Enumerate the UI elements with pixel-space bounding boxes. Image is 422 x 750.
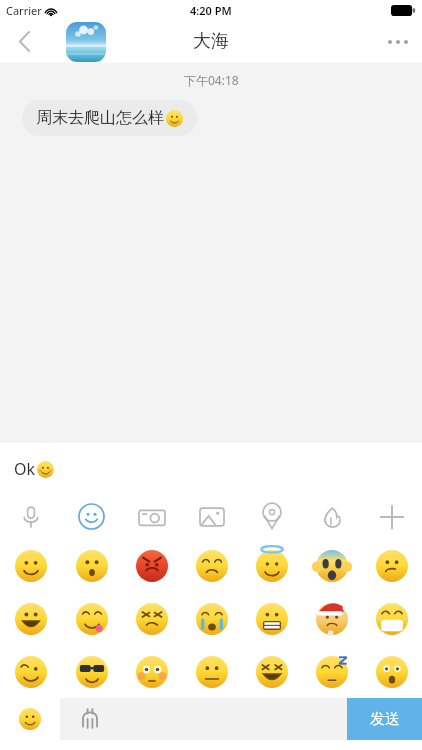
- button[interactable]: Emoji: [0, 645, 61, 698]
- button[interactable]: Emoji: [61, 539, 122, 592]
- staticText: Carrier: [6, 3, 42, 18]
- button[interactable]: Emoji: [0, 698, 60, 740]
- button[interactable]: 周末去爬山怎么样: [22, 100, 197, 136]
- button[interactable]: Emoji: [362, 645, 422, 698]
- button[interactable]: Back: [0, 20, 48, 63]
- button[interactable]: Voice: [0, 494, 61, 539]
- button[interactable]: Emoji: [0, 592, 61, 645]
- button[interactable]: Emoji: [182, 539, 242, 592]
- button[interactable]: Emoji: [182, 592, 242, 645]
- button[interactable]: Photos: [182, 494, 242, 539]
- button[interactable]: Emoji: [122, 645, 182, 698]
- button[interactable]: Emoji: [242, 592, 302, 645]
- button[interactable]: Emoji: [0, 539, 61, 592]
- button[interactable]: Camera: [122, 494, 182, 539]
- button[interactable]: Emoji: [362, 539, 422, 592]
- staticText: 周末去爬山怎么样: [36, 108, 164, 128]
- button[interactable]: Avatar: [66, 22, 106, 62]
- button[interactable]: Emoji: [302, 645, 362, 698]
- button[interactable]: Location: [242, 494, 302, 539]
- button[interactable]: Emoji: [302, 539, 362, 592]
- button[interactable]: Hot: [302, 494, 362, 539]
- staticText: Ok: [14, 458, 36, 480]
- button[interactable]: Emoji: [302, 592, 362, 645]
- staticText: 发送: [370, 710, 400, 729]
- button[interactable]: Emoji: [122, 592, 182, 645]
- button[interactable]: Emoji: [122, 539, 182, 592]
- button[interactable]: Emoji: [61, 645, 122, 698]
- staticText: 下午04:18: [184, 72, 239, 88]
- button[interactable]: More options: [374, 20, 422, 63]
- button[interactable]: 发送: [347, 698, 422, 740]
- button[interactable]: Emoji: [61, 592, 122, 645]
- button[interactable]: Emoji: [362, 592, 422, 645]
- staticText: 大海: [193, 30, 229, 53]
- staticText: 4:20 PM: [190, 3, 232, 18]
- button[interactable]: Emoji: [61, 494, 122, 539]
- button[interactable]: More: [362, 494, 422, 539]
- button[interactable]: Emoji: [242, 645, 302, 698]
- button[interactable]: Keyboard: [60, 698, 347, 740]
- button[interactable]: Emoji: [242, 539, 302, 592]
- button[interactable]: Emoji: [182, 645, 242, 698]
